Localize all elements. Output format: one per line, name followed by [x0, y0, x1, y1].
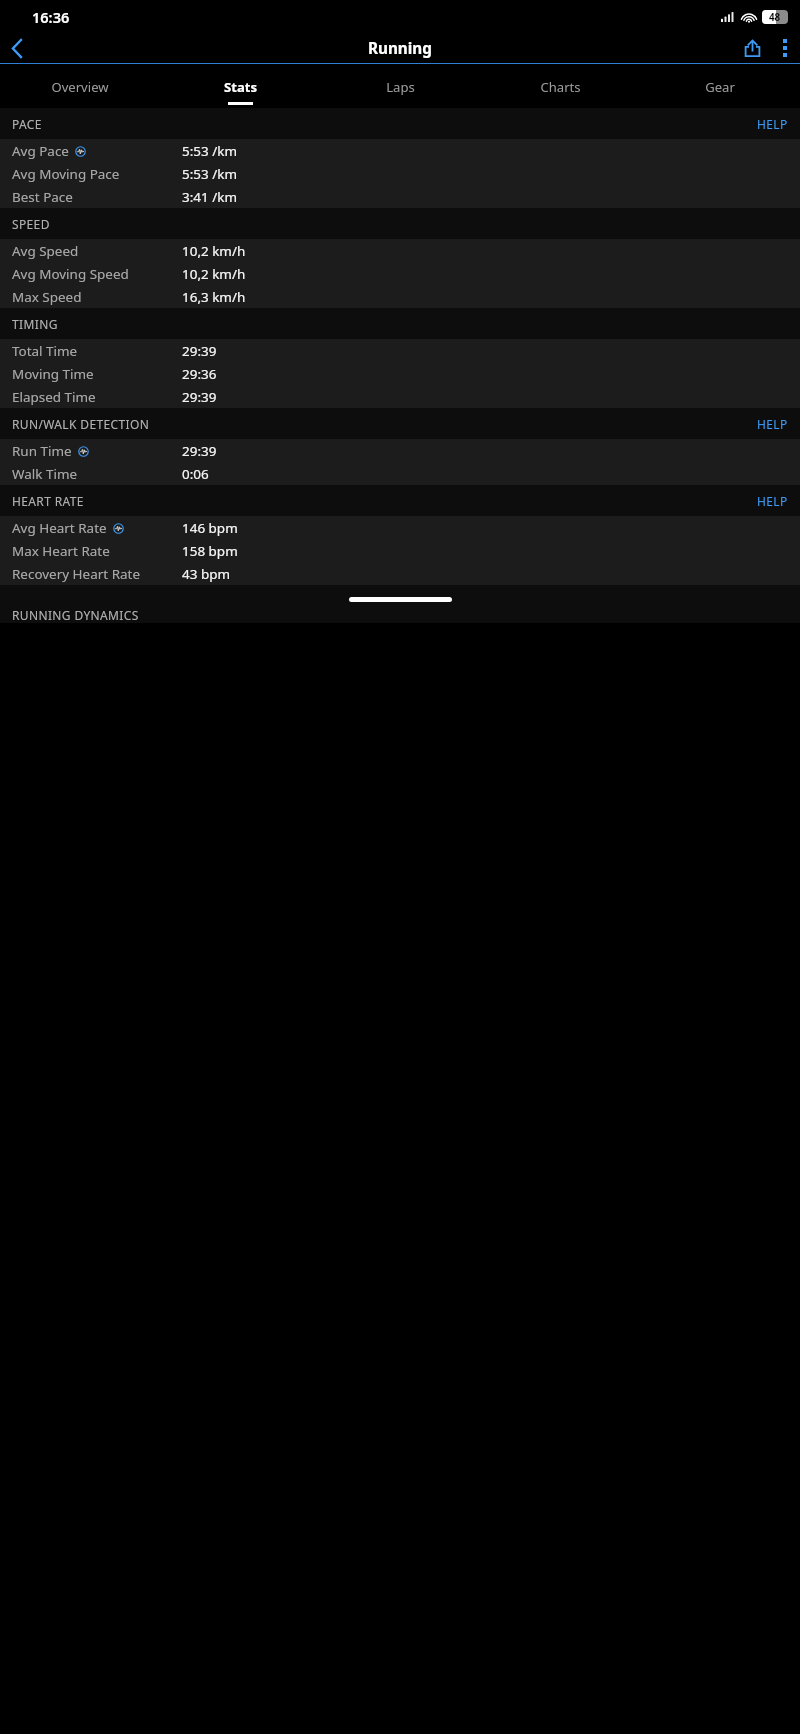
staticText: HELP: [757, 416, 788, 432]
button[interactable]: Recovery Heart Rate: [0, 562, 800, 585]
staticText: Recovery Heart Rate: [12, 565, 140, 583]
staticText: Max Heart Rate: [12, 542, 110, 560]
staticText: TIMING: [12, 316, 58, 332]
staticText: Max Speed: [12, 288, 82, 306]
button[interactable]: More options: [769, 33, 800, 63]
staticText: Charts: [540, 78, 581, 96]
staticText: 10,2 km/h: [182, 242, 246, 260]
staticText: Total Time: [12, 342, 78, 360]
button[interactable]: Best Pace: [0, 185, 800, 208]
button[interactable]: Back: [0, 33, 35, 63]
staticText: Avg Moving Pace: [12, 165, 120, 183]
button[interactable]: Moving Time: [0, 362, 800, 385]
staticText: Laps: [386, 78, 415, 96]
staticText: 10,2 km/h: [182, 265, 246, 283]
button[interactable]: Avg Moving Speed: [0, 262, 800, 285]
button[interactable]: Walk Time: [0, 462, 800, 485]
button[interactable]: Gear: [640, 64, 800, 108]
staticText: 0:06: [182, 465, 209, 483]
staticText: PACE: [12, 116, 42, 132]
staticText: Avg Heart Rate: [12, 519, 107, 537]
staticText: Avg Pace: [12, 142, 69, 160]
button[interactable]: Avg Pace: [0, 139, 800, 162]
staticText: 48: [769, 11, 781, 24]
button[interactable]: Stats: [160, 64, 320, 108]
button[interactable]: HELP: [745, 485, 800, 516]
staticText: Avg Speed: [12, 242, 79, 260]
button[interactable]: Avg Speed: [0, 239, 800, 262]
staticText: 5:53 /km: [182, 142, 237, 160]
button[interactable]: Run Time: [0, 439, 800, 462]
staticText: Run Time: [12, 442, 72, 460]
button[interactable]: HELP: [745, 408, 800, 439]
button[interactable]: Laps: [320, 64, 480, 108]
staticText: 29:39: [182, 442, 217, 460]
button[interactable]: Share: [736, 33, 769, 63]
staticText: HEART RATE: [12, 493, 84, 509]
staticText: SPEED: [12, 216, 50, 232]
staticText: Overview: [51, 78, 109, 96]
button[interactable]: Avg Moving Pace: [0, 162, 800, 185]
button[interactable]: Total Time: [0, 339, 800, 362]
staticText: Walk Time: [12, 465, 78, 483]
staticText: 43 bpm: [182, 565, 231, 583]
staticText: 16:36: [32, 7, 70, 27]
staticText: 29:36: [182, 365, 217, 383]
button[interactable]: Elapsed Time: [0, 385, 800, 408]
button[interactable]: Avg Heart Rate: [0, 516, 800, 539]
staticText: Best Pace: [12, 188, 73, 206]
staticText: Avg Moving Speed: [12, 265, 129, 283]
button[interactable]: Max Heart Rate: [0, 539, 800, 562]
staticText: 16,3 km/h: [182, 288, 246, 306]
staticText: HELP: [757, 116, 788, 132]
staticText: 29:39: [182, 388, 217, 406]
staticText: 29:39: [182, 342, 217, 360]
staticText: Running: [368, 38, 432, 59]
staticText: Stats: [224, 78, 257, 96]
staticText: Elapsed Time: [12, 388, 96, 406]
button[interactable]: Charts: [480, 64, 640, 108]
staticText: 146 bpm: [182, 519, 238, 537]
staticText: Gear: [705, 78, 735, 96]
staticText: RUNNING DYNAMICS: [12, 607, 139, 623]
staticText: RUN/WALK DETECTION: [12, 416, 150, 432]
staticText: 3:41 /km: [182, 188, 237, 206]
button[interactable]: Overview: [0, 64, 160, 108]
button[interactable]: HELP: [745, 108, 800, 139]
staticText: HELP: [757, 493, 788, 509]
staticText: Moving Time: [12, 365, 94, 383]
button[interactable]: Max Speed: [0, 285, 800, 308]
staticText: 158 bpm: [182, 542, 238, 560]
staticText: 5:53 /km: [182, 165, 237, 183]
